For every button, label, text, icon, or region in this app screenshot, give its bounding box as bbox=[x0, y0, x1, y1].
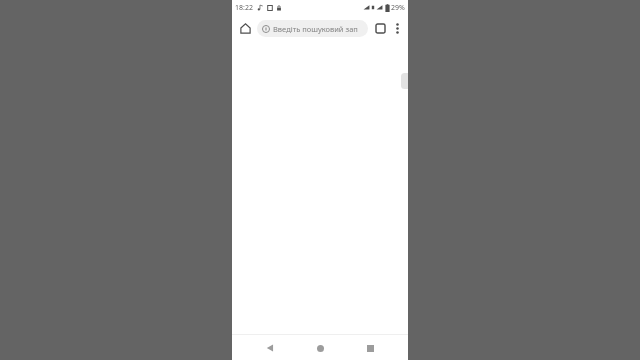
button[interactable]: Home bbox=[235, 18, 255, 38]
button[interactable]: Recent apps bbox=[358, 336, 382, 360]
button[interactable]: Введіть пошуковий зап bbox=[257, 20, 368, 37]
staticText: 18:22 bbox=[235, 3, 253, 13]
button[interactable]: Home bbox=[308, 336, 332, 360]
staticText: 29% bbox=[391, 3, 405, 13]
button[interactable]: Back bbox=[258, 336, 282, 360]
button[interactable]: More options bbox=[389, 20, 405, 36]
button[interactable]: Tabs bbox=[371, 19, 389, 37]
button[interactable]: Tab switcher handle bbox=[401, 73, 408, 89]
staticText: Введіть пошуковий зап bbox=[273, 24, 358, 34]
